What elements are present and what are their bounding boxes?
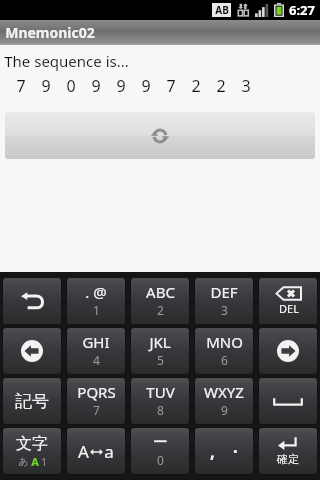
staticText: a xyxy=(104,440,114,463)
staticText: あ xyxy=(18,455,29,468)
staticText: DEL xyxy=(279,301,299,316)
button[interactable]: ABC xyxy=(131,278,189,324)
staticText: 9 xyxy=(116,75,126,97)
button[interactable]: Move cursor right xyxy=(259,328,317,374)
button[interactable]: ー xyxy=(131,428,189,474)
button[interactable]: Move cursor left xyxy=(3,328,61,374)
staticText: MNO xyxy=(206,332,243,352)
staticText: PQRS xyxy=(77,382,116,402)
button[interactable]: PQRS xyxy=(67,378,125,424)
staticText: 7 xyxy=(166,75,176,97)
button[interactable]: Comma and period xyxy=(195,428,253,474)
staticText: 0 xyxy=(157,452,164,468)
staticText: , xyxy=(210,440,215,463)
staticText: 5 xyxy=(157,352,164,368)
staticText: 9 xyxy=(41,75,51,97)
staticText: 2 xyxy=(216,75,226,97)
staticText: 9 xyxy=(91,75,101,97)
staticText: A xyxy=(31,454,39,469)
staticText: 4 xyxy=(93,352,100,368)
button[interactable]: Toggle case xyxy=(67,428,125,474)
button[interactable]: TUV xyxy=(131,378,189,424)
staticText: 7 xyxy=(16,75,26,97)
staticText: 9 xyxy=(141,75,151,97)
button[interactable]: . @ xyxy=(67,278,125,324)
button[interactable]: GHI xyxy=(67,328,125,374)
staticText: . @ xyxy=(85,282,107,302)
staticText: 記号 xyxy=(15,391,49,412)
button[interactable]: WXYZ xyxy=(195,378,253,424)
staticText: 6:27 xyxy=(289,1,315,19)
staticText: ー xyxy=(153,433,168,452)
staticText: Mnemonic02 xyxy=(5,23,95,42)
button[interactable]: Delete xyxy=(259,278,317,324)
button[interactable]: DEF xyxy=(195,278,253,324)
staticText: 1 xyxy=(41,455,47,469)
button[interactable]: 記号 xyxy=(3,378,61,424)
staticText: 2 xyxy=(191,75,201,97)
staticText: 2 xyxy=(157,302,164,318)
button[interactable]: Confirm xyxy=(259,428,317,474)
staticText: 1 xyxy=(93,302,100,318)
staticText: WXYZ xyxy=(204,382,244,402)
staticText: DEF xyxy=(210,282,238,302)
staticText: 確定 xyxy=(277,452,299,466)
staticText: · xyxy=(233,440,238,463)
button[interactable]: Space xyxy=(259,378,317,424)
staticText: 9 xyxy=(221,402,228,418)
staticText: TUV xyxy=(146,382,175,402)
staticText: 6 xyxy=(221,352,228,368)
staticText: 3 xyxy=(221,302,228,318)
other: Refresh sequence xyxy=(151,127,169,145)
staticText: JKL xyxy=(149,332,171,352)
staticText: 文字 xyxy=(16,434,48,454)
button[interactable]: Switch input mode xyxy=(3,428,61,474)
staticText: 8 xyxy=(157,402,164,418)
staticText: AB xyxy=(215,3,229,17)
staticText: 0 xyxy=(66,75,76,97)
staticText: 3 xyxy=(241,75,251,97)
button[interactable]: MNO xyxy=(195,328,253,374)
staticText: The sequence is... xyxy=(4,51,129,71)
staticText: GHI xyxy=(82,332,110,352)
button[interactable]: JKL xyxy=(131,328,189,374)
staticText: 7 xyxy=(93,402,100,418)
staticText: ABC xyxy=(146,282,175,302)
button[interactable]: Refresh sequence xyxy=(5,112,315,159)
staticText: A xyxy=(78,440,89,463)
button[interactable]: Undo xyxy=(3,278,61,324)
